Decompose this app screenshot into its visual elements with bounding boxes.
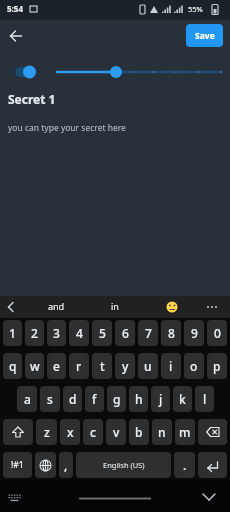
- staticText: w: [30, 358, 40, 374]
- button[interactable]: i: [161, 353, 181, 379]
- button[interactable]: 9: [184, 320, 204, 346]
- staticText: 55%: [188, 4, 203, 14]
- staticText: 8: [168, 325, 175, 341]
- staticText: n: [158, 424, 166, 440]
- staticText: 9: [191, 325, 198, 341]
- button[interactable]: 3: [47, 320, 66, 346]
- staticText: !#1: [11, 459, 24, 471]
- button[interactable]: 7: [138, 320, 158, 346]
- button[interactable]: n: [152, 419, 172, 445]
- button[interactable]: u: [138, 353, 158, 379]
- staticText: 1: [9, 325, 16, 341]
- button[interactable]: q: [3, 353, 22, 379]
- staticText: u: [144, 358, 152, 374]
- button[interactable]: f: [85, 386, 104, 412]
- button[interactable]: v: [106, 419, 126, 445]
- staticText: j: [159, 391, 163, 407]
- button[interactable]: 0: [207, 320, 227, 346]
- button[interactable]: m: [175, 419, 195, 445]
- staticText: in: [111, 300, 119, 312]
- staticText: 7: [145, 325, 152, 341]
- button[interactable]: [3, 419, 33, 445]
- button[interactable]: !#1: [3, 452, 32, 478]
- staticText: i: [169, 358, 173, 374]
- staticText: d: [69, 391, 77, 407]
- button[interactable]: 4: [69, 320, 89, 346]
- staticText: x: [67, 424, 74, 440]
- staticText: r: [76, 358, 82, 374]
- staticText: 5: [99, 325, 106, 341]
- staticText: m: [179, 424, 191, 440]
- staticText: l: [203, 391, 207, 407]
- staticText: 3: [53, 325, 60, 341]
- button[interactable]: k: [173, 386, 192, 412]
- staticText: s: [47, 391, 53, 407]
- staticText: Save: [195, 30, 215, 42]
- staticText: f: [92, 391, 97, 407]
- staticText: h: [135, 391, 143, 407]
- staticText: 2: [31, 325, 38, 341]
- button[interactable]: o: [184, 353, 204, 379]
- staticText: q: [9, 358, 17, 374]
- staticText: Secret 1: [8, 91, 56, 107]
- button[interactable]: j: [151, 386, 170, 412]
- button[interactable]: [198, 419, 227, 445]
- staticText: z: [44, 424, 50, 440]
- button[interactable]: a: [17, 386, 37, 412]
- button[interactable]: 8: [161, 320, 181, 346]
- staticText: e: [53, 358, 60, 374]
- button[interactable]: h: [129, 386, 148, 412]
- button[interactable]: g: [107, 386, 126, 412]
- button[interactable]: e: [47, 353, 66, 379]
- button[interactable]: ,: [59, 452, 73, 478]
- staticText: ,: [64, 457, 68, 473]
- button[interactable]: 5: [92, 320, 112, 346]
- staticText: you can type your secret here: [8, 122, 126, 134]
- button[interactable]: d: [63, 386, 82, 412]
- button[interactable]: .: [174, 452, 195, 478]
- staticText: g: [113, 391, 121, 407]
- staticText: b: [135, 424, 143, 440]
- button[interactable]: w: [25, 353, 44, 379]
- button[interactable]: English (US): [76, 452, 171, 478]
- staticText: 0: [214, 325, 221, 341]
- button[interactable]: r: [69, 353, 89, 379]
- staticText: o: [190, 358, 198, 374]
- button[interactable]: [35, 452, 56, 478]
- button[interactable]: t: [92, 353, 112, 379]
- button[interactable]: s: [40, 386, 60, 412]
- button[interactable]: p: [207, 353, 227, 379]
- staticText: c: [90, 424, 96, 440]
- staticText: 5:54: [7, 3, 23, 14]
- staticText: English (US): [103, 460, 145, 470]
- button[interactable]: y: [115, 353, 135, 379]
- staticText: 6: [122, 325, 129, 341]
- button[interactable]: [198, 452, 227, 478]
- staticText: and: [48, 300, 65, 312]
- button[interactable]: x: [60, 419, 80, 445]
- button[interactable]: b: [129, 419, 149, 445]
- staticText: v: [113, 424, 120, 440]
- button[interactable]: c: [83, 419, 103, 445]
- button[interactable]: 6: [115, 320, 135, 346]
- staticText: .: [183, 457, 187, 473]
- staticText: k: [179, 391, 186, 407]
- staticText: p: [213, 358, 221, 374]
- staticText: a: [24, 391, 31, 407]
- staticText: y: [122, 358, 129, 374]
- staticText: 4: [76, 325, 83, 341]
- button[interactable]: l: [195, 386, 214, 412]
- staticText: t: [100, 358, 105, 374]
- button[interactable]: 2: [25, 320, 44, 346]
- button[interactable]: z: [36, 419, 57, 445]
- button[interactable]: Save: [186, 24, 223, 47]
- button[interactable]: 1: [3, 320, 22, 346]
- button[interactable]: [4, 24, 28, 48]
